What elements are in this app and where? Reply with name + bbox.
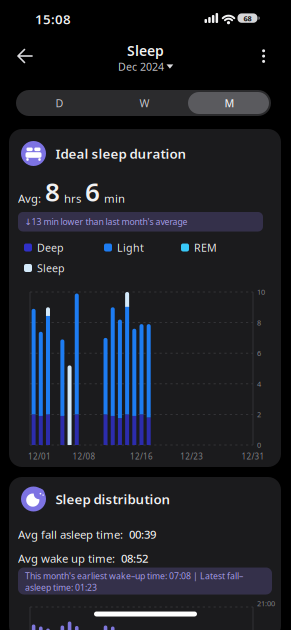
staticText: Light [117,240,144,255]
staticText: 15:08 [35,10,71,28]
staticText: 68 [243,13,251,23]
staticText: 8 [257,318,261,328]
staticText: 0 [257,440,261,450]
staticText: REM [194,240,217,255]
staticText: min [104,191,125,206]
staticText: ↓13 min lower than last month's average [24,216,187,228]
staticText: 12/31 [241,451,264,462]
staticText: Avg: [18,191,41,206]
staticText: 6 [85,174,100,209]
staticText: 6 [257,348,261,358]
staticText: Ideal sleep duration [55,144,186,163]
staticText: 21:00 [257,598,275,608]
staticText: M [224,96,234,110]
staticText: Sleep [37,261,65,275]
staticText: 08:52 [121,551,148,566]
staticText: Deep [37,240,64,255]
staticText: 8 [45,174,60,209]
staticText: Avg wake up time: [18,551,115,566]
staticText: 12/16 [130,451,153,462]
staticText: hrs [64,191,81,206]
staticText: 12/01 [28,451,51,462]
staticText: 2 [257,409,261,419]
staticText: Avg fall asleep time: [18,527,123,542]
staticText: W [139,96,149,110]
staticText: 12/23 [180,451,203,462]
staticText: asleep time: 01:23 [25,582,97,593]
staticText: 00:39 [129,527,156,542]
staticText: 12/08 [72,451,95,462]
staticText: Sleep distribution [55,490,170,508]
staticText: Dec 2024 [118,59,164,74]
staticText: 4 [257,379,261,389]
staticText: 10 [257,287,265,297]
staticText: Sleep [127,41,164,60]
staticText: D [55,96,63,110]
staticText: This month's earliest wake–up time: 07:0… [25,570,243,582]
